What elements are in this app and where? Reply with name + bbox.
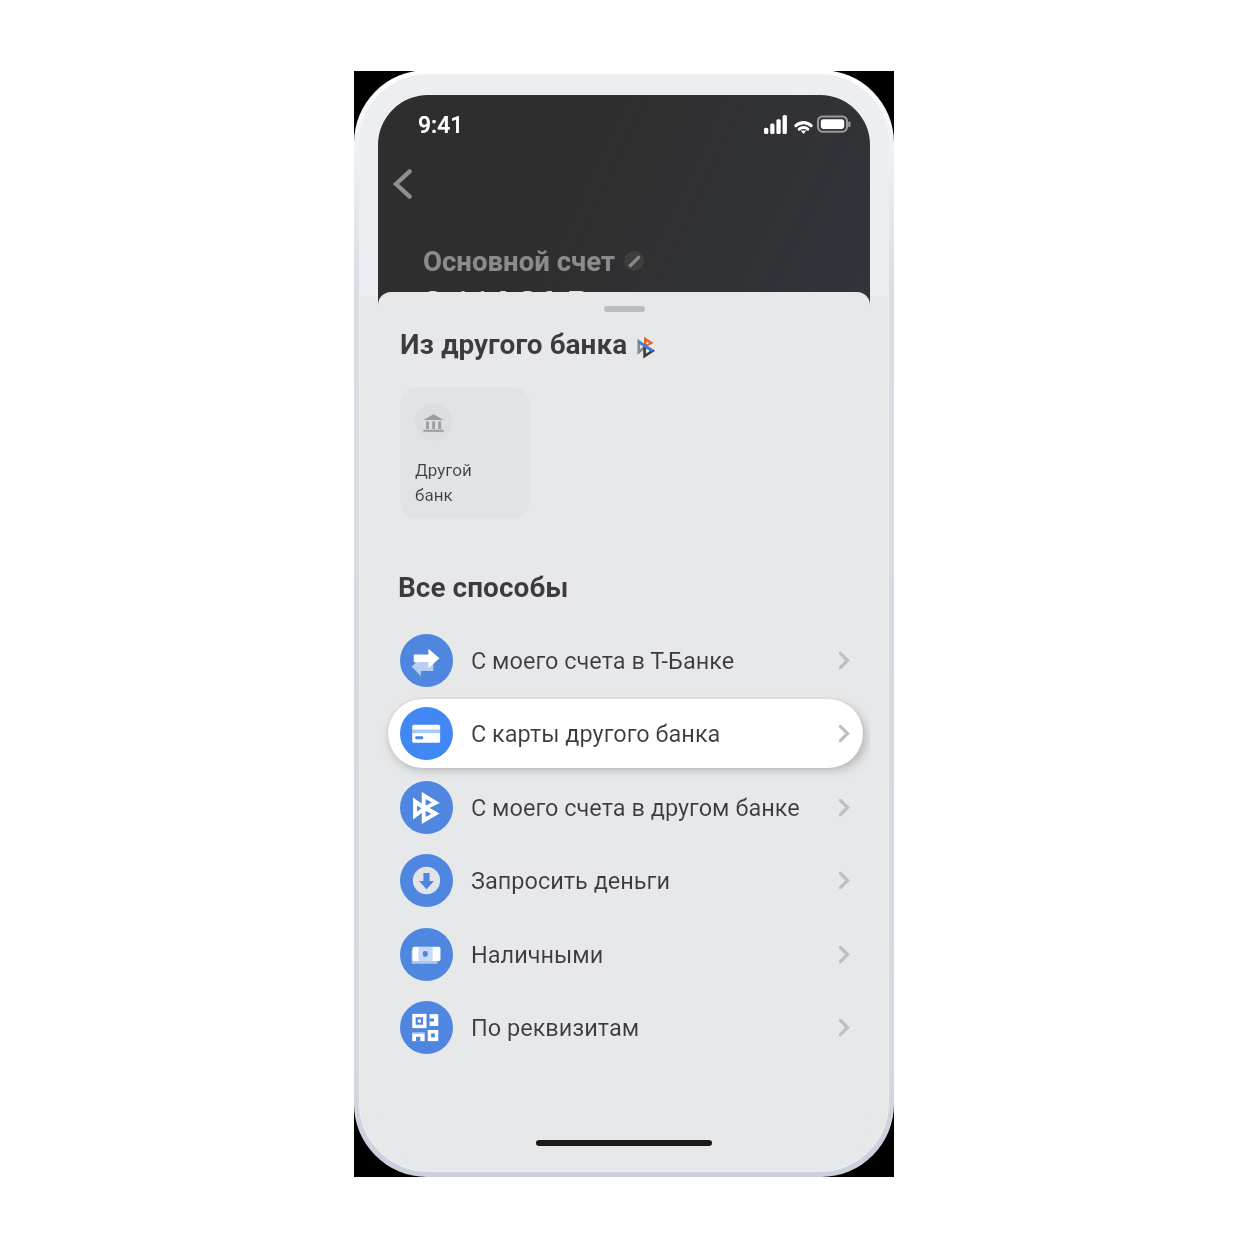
button[interactable]: По реквизитам	[388, 993, 863, 1062]
staticText: Запросить деньги	[471, 867, 671, 895]
button[interactable]: С моего счета в Т-Банке	[388, 626, 863, 695]
button[interactable]: Rename account	[624, 251, 644, 271]
staticText: Все способы	[398, 571, 569, 604]
staticText: Другой банк	[415, 460, 472, 505]
staticText: Наличными	[471, 941, 604, 969]
staticText: Из другого банка	[400, 328, 628, 361]
button[interactable]: Другой банк	[400, 387, 530, 519]
staticText: По реквизитам	[471, 1014, 640, 1042]
staticText: 9:41	[418, 112, 464, 139]
button[interactable]: Запросить деньги	[388, 846, 863, 915]
staticText: С карты другого банка	[471, 720, 721, 748]
button[interactable]: Back	[378, 160, 426, 208]
staticText: С моего счета в другом банке	[471, 794, 800, 822]
button[interactable]: Наличными	[388, 920, 863, 989]
button[interactable]: С карты другого банка	[388, 699, 863, 768]
staticText: С моего счета в Т-Банке	[471, 647, 735, 675]
staticText: 0 114,26 ₽	[423, 283, 590, 323]
button[interactable]: С моего счета в другом банке	[388, 773, 863, 842]
staticText: Основной счет	[423, 245, 615, 277]
